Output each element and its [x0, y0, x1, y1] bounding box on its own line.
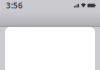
- staticText: 3:56: [6, 0, 23, 11]
